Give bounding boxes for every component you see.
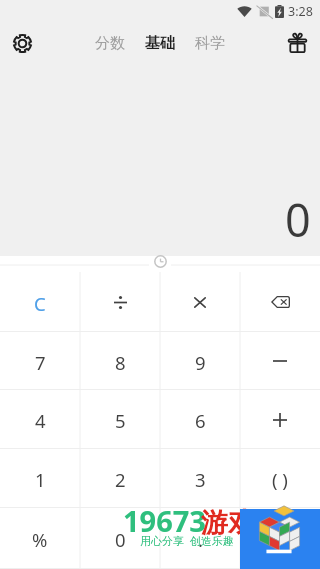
staticText: 分数 — [95, 34, 125, 53]
staticText: 5 — [115, 408, 126, 433]
button[interactable] — [160, 272, 240, 332]
button[interactable]: History — [148, 253, 172, 269]
button[interactable]: C — [0, 272, 80, 332]
staticText: = — [275, 527, 286, 552]
staticText: 3 — [195, 467, 206, 492]
button[interactable]: 8 — [80, 332, 160, 390]
staticText: 游戏 — [201, 506, 255, 540]
staticText: 用心分享 创造乐趣 — [140, 533, 234, 548]
staticText: 0 — [115, 527, 126, 552]
button[interactable]: 6 — [160, 390, 240, 449]
staticText: ( ) — [272, 467, 288, 492]
staticText: % — [32, 527, 48, 552]
button[interactable]: 5 — [80, 390, 160, 449]
staticText: 19673 — [123, 501, 206, 540]
button[interactable]: 7 — [0, 332, 80, 390]
button[interactable]: 9 — [160, 332, 240, 390]
staticText: 2 — [115, 467, 126, 492]
button[interactable]: 科学 — [193, 29, 227, 58]
button[interactable]: 3 — [160, 449, 240, 508]
staticText: 7 — [35, 350, 46, 375]
button[interactable]: = — [240, 508, 320, 569]
button[interactable]: Backspace — [240, 272, 320, 332]
staticText: C — [34, 291, 46, 316]
staticText: 9 — [195, 350, 206, 375]
button[interactable]: Gift — [284, 30, 310, 56]
button[interactable] — [240, 332, 320, 390]
staticText: 6 — [195, 408, 206, 433]
button[interactable]: % — [0, 508, 80, 569]
staticText: . — [198, 527, 203, 552]
button[interactable]: 2 — [80, 449, 160, 508]
button[interactable] — [80, 272, 160, 332]
button[interactable]: Settings — [9, 30, 35, 56]
button[interactable]: . — [160, 508, 240, 569]
button[interactable]: ( ) — [240, 449, 320, 508]
button[interactable]: 基础 — [143, 29, 177, 58]
staticText: 基础 — [145, 34, 175, 53]
staticText: 3:28 — [288, 3, 313, 20]
button[interactable]: 分数 — [93, 29, 127, 58]
other: Backspace — [271, 296, 290, 308]
button[interactable]: 0 — [80, 508, 160, 569]
staticText: 0 — [285, 189, 311, 250]
staticText: 科学 — [195, 34, 225, 53]
staticText: 1 — [35, 467, 46, 492]
button[interactable] — [240, 390, 320, 449]
staticText: 8 — [115, 350, 126, 375]
button[interactable]: 4 — [0, 390, 80, 449]
button[interactable]: 1 — [0, 449, 80, 508]
staticText: 4 — [35, 408, 46, 433]
